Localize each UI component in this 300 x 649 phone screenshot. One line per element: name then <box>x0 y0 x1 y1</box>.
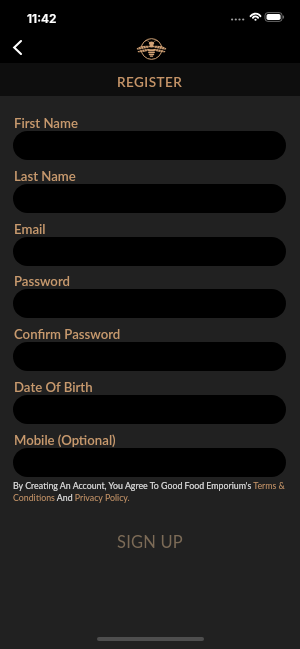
staticText: Confirm Password <box>14 326 121 342</box>
button[interactable] <box>13 448 286 477</box>
button[interactable]: SIGN UP <box>0 525 300 559</box>
staticText: 11:42 <box>27 11 57 26</box>
button[interactable] <box>13 395 286 424</box>
staticText: REGISTER <box>117 74 183 90</box>
button[interactable]: Terms & Conditions <box>252 480 286 491</box>
staticText: Mobile (Optional) <box>14 432 116 448</box>
staticText: Date Of Birth <box>14 379 93 395</box>
staticText: Last Name <box>14 168 76 184</box>
button[interactable] <box>13 237 286 266</box>
staticText: Email <box>14 221 46 237</box>
staticText: SIGN UP <box>117 532 183 552</box>
button[interactable]: Back <box>3 34 30 61</box>
button[interactable] <box>13 184 286 213</box>
button[interactable]: Terms & Conditions <box>13 492 58 503</box>
staticText: First Name <box>14 115 78 131</box>
button[interactable] <box>13 289 286 318</box>
button[interactable] <box>13 131 286 160</box>
staticText: Password <box>14 273 70 289</box>
staticText: By Creating An Account, You Agree To Goo… <box>13 480 289 503</box>
button[interactable]: Privacy Policy <box>75 492 131 503</box>
button[interactable] <box>13 342 286 371</box>
